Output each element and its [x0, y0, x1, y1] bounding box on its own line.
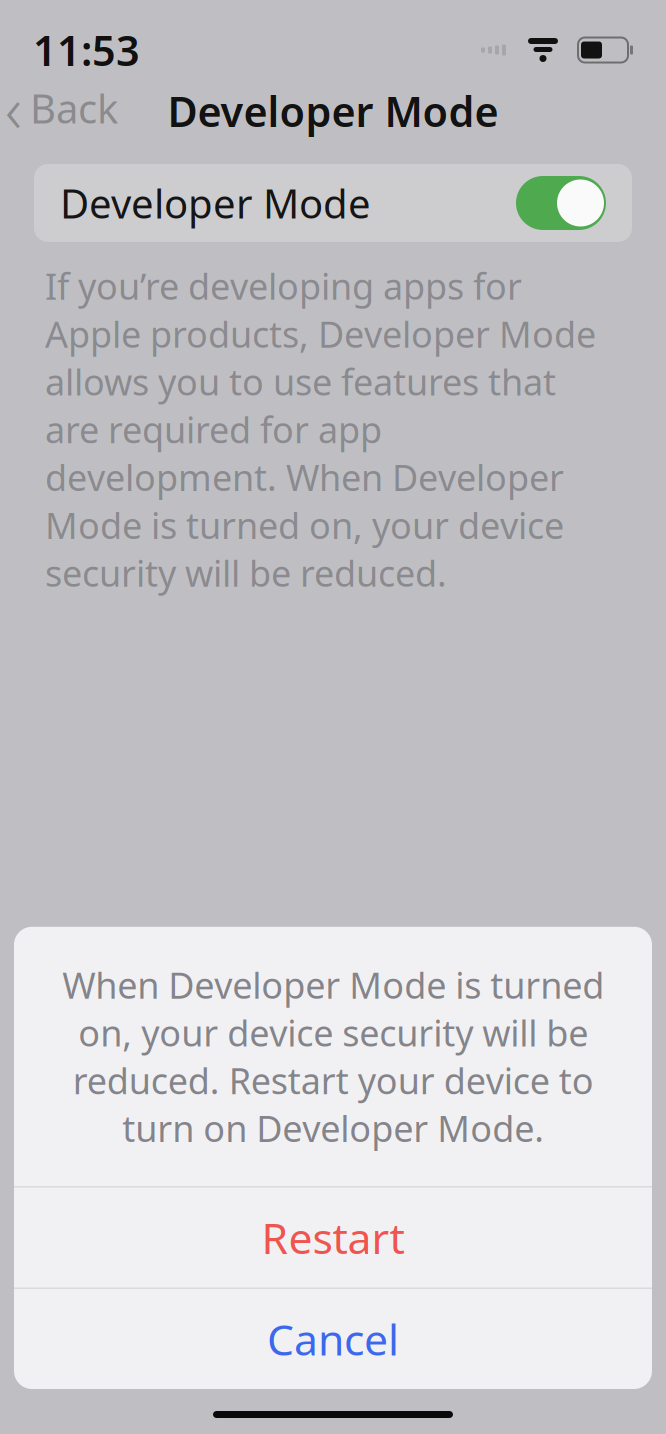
staticText: ‹ — [5, 65, 22, 150]
button[interactable]: Cancel — [14, 1289, 652, 1389]
staticText: Back — [30, 81, 118, 134]
staticText: If you’re developing apps for Apple prod… — [45, 262, 596, 597]
staticText: Cancel — [267, 1311, 399, 1367]
staticText: Developer Mode — [60, 176, 371, 229]
staticText: 11:53 — [33, 23, 140, 77]
button[interactable]: Developer Mode — [34, 164, 632, 242]
button[interactable]: ‹ — [5, 65, 130, 156]
button[interactable]: Restart — [14, 1187, 652, 1287]
staticText: When Developer Mode is turned on, your d… — [62, 961, 604, 1152]
staticText: Developer Mode — [167, 84, 498, 138]
staticText: Restart — [261, 1209, 404, 1266]
